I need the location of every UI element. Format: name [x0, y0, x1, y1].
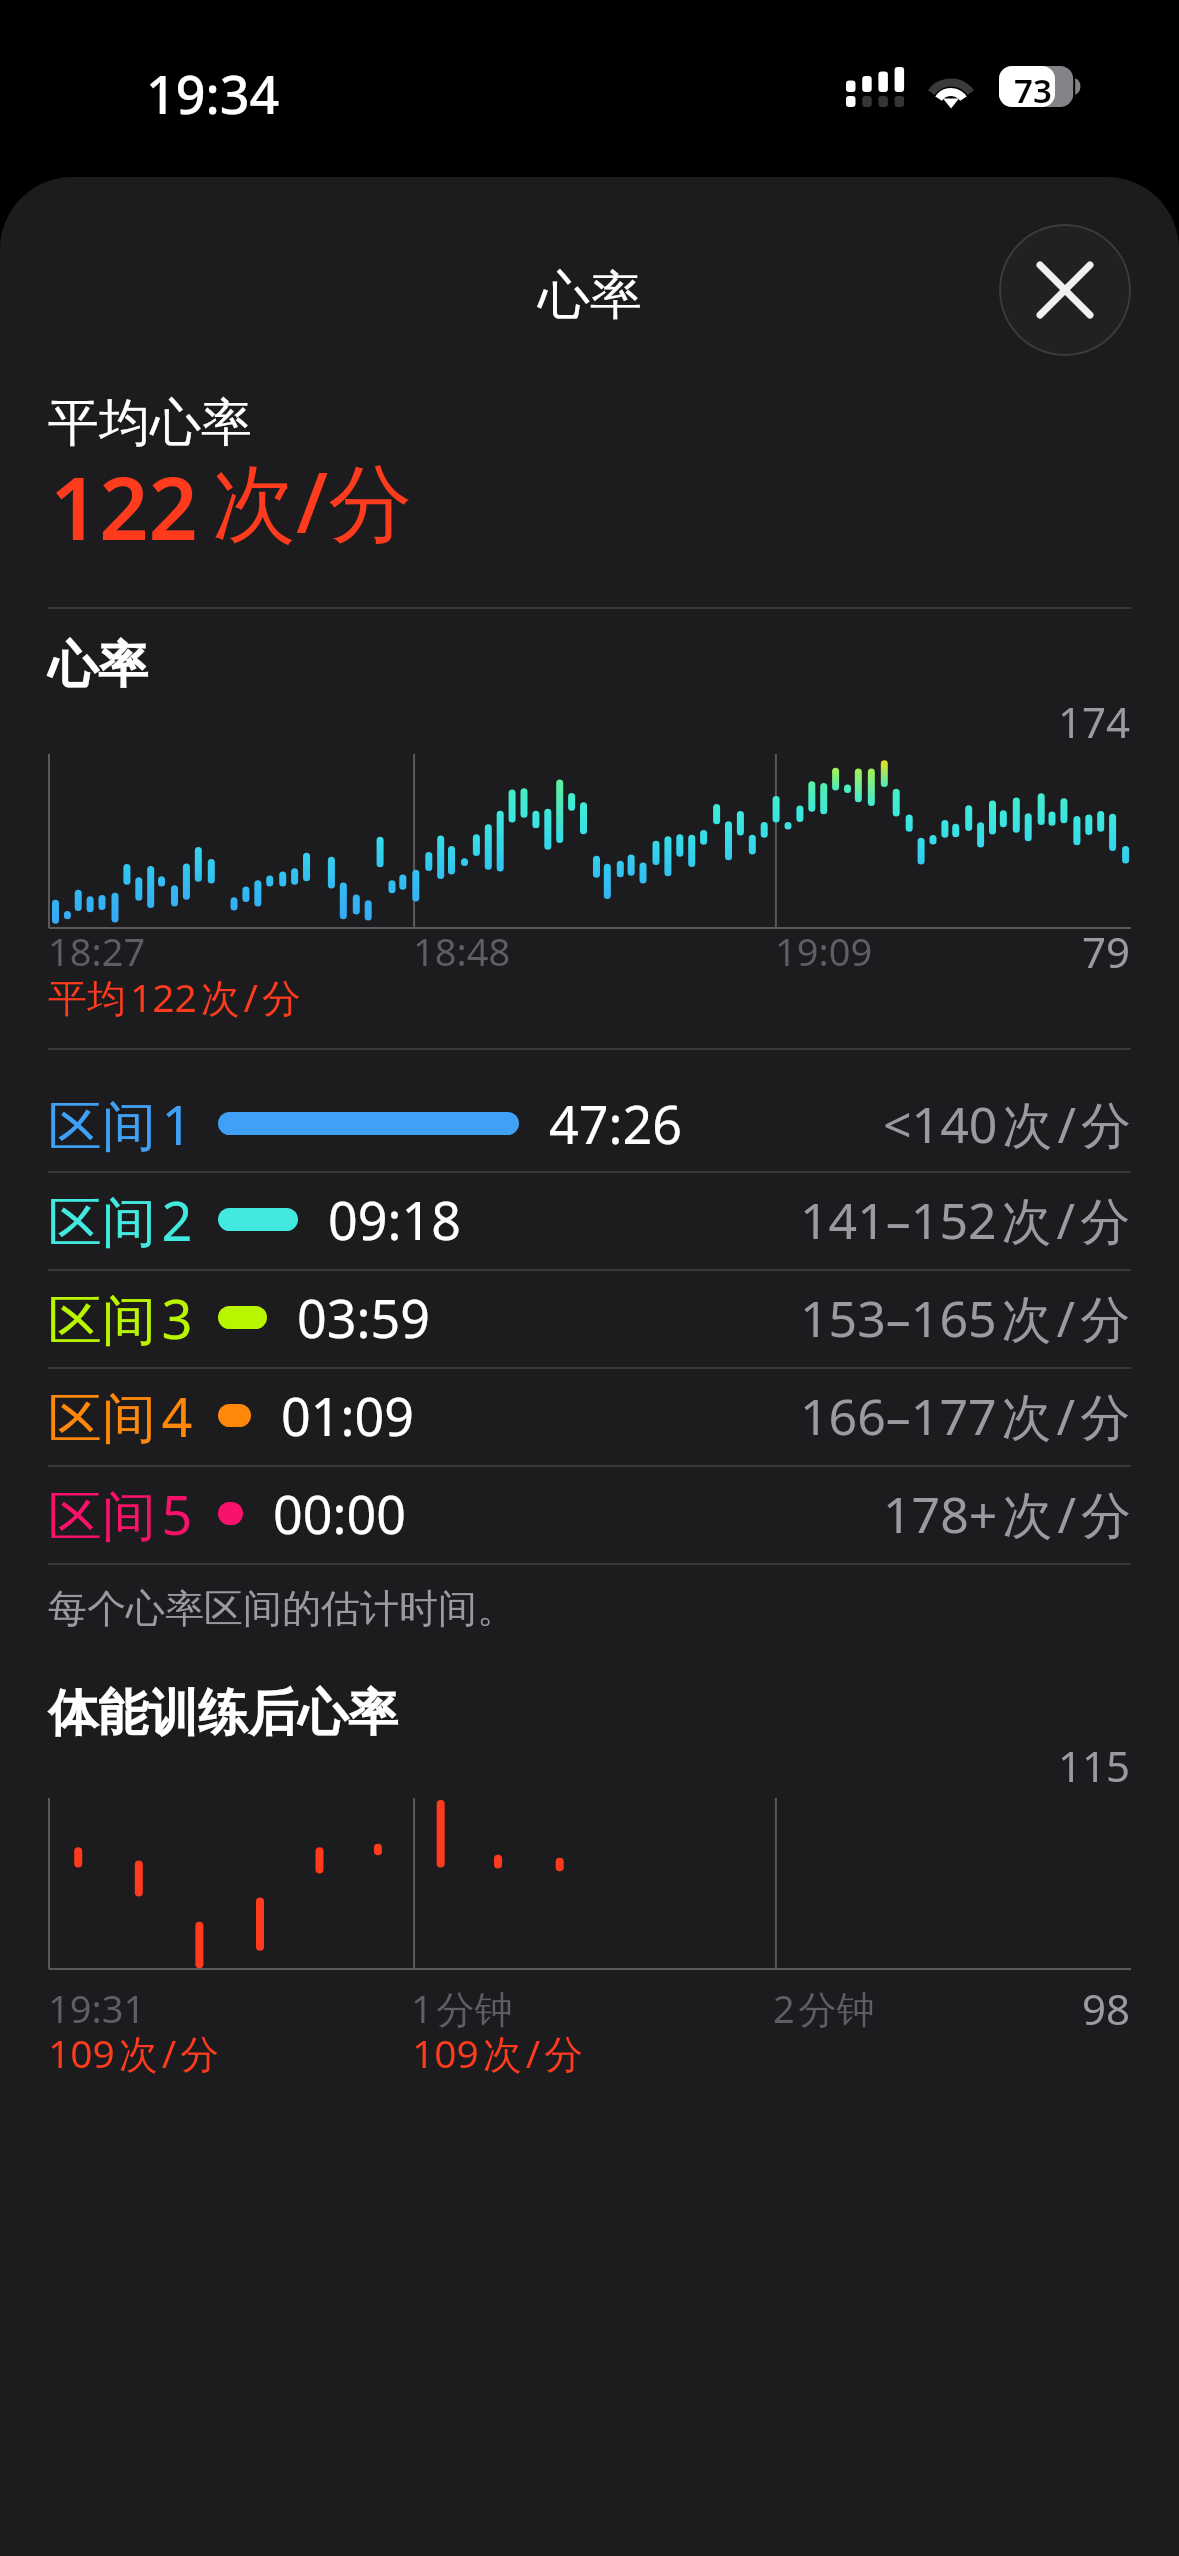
staticText: 区间 5	[48, 1477, 193, 1551]
button[interactable]: 区间 5	[48, 1465, 1131, 1562]
staticText: 115	[1058, 1737, 1131, 1794]
staticText: 平均 122 次 / 分	[48, 970, 302, 1023]
staticText: 区间 4	[48, 1379, 193, 1453]
staticText: 2 分钟	[773, 1982, 875, 2034]
staticText: 区间 3	[48, 1281, 193, 1355]
staticText: 109 次 / 分	[412, 2026, 584, 2079]
staticText: 178+ 次 / 分	[883, 1480, 1131, 1548]
staticText: 141–152 次 / 分	[800, 1186, 1131, 1254]
staticText: 79	[1082, 923, 1131, 980]
staticText: 47:26	[549, 1088, 682, 1159]
staticText: 次/分	[212, 443, 413, 558]
button[interactable]: 区间 3	[48, 1269, 1131, 1366]
button[interactable]: 关闭	[999, 224, 1131, 356]
staticText: 122	[50, 448, 198, 565]
staticText: <140 次 / 分	[883, 1090, 1131, 1158]
staticText: 心率	[48, 634, 148, 697]
staticText: 09:18	[328, 1184, 461, 1255]
staticText: 98	[1082, 1980, 1131, 2037]
button[interactable]: 区间 1	[48, 1075, 1131, 1172]
staticText: 03:59	[297, 1282, 430, 1353]
staticText: 18:48	[413, 925, 511, 977]
staticText: 区间 2	[48, 1183, 193, 1257]
staticText: 109 次 / 分	[48, 2026, 220, 2079]
staticText: 00:00	[273, 1478, 406, 1549]
staticText: 01:09	[281, 1380, 414, 1451]
staticText: 19:09	[775, 925, 873, 977]
staticText: 1 分钟	[411, 1982, 513, 2034]
staticText: 每个心率区间的估计时间。	[48, 1584, 516, 1633]
button[interactable]: 区间 4	[48, 1367, 1131, 1464]
staticText: 平均心率	[48, 391, 252, 455]
staticText: 174	[1058, 693, 1131, 750]
staticText: 体能训练后心率	[48, 1682, 398, 1745]
staticText: 19:34	[146, 58, 280, 129]
staticText: 166–177 次 / 分	[800, 1382, 1131, 1450]
staticText: 18:27	[48, 925, 146, 977]
staticText: 心率	[538, 263, 642, 329]
staticText: 19:31	[48, 1982, 146, 2034]
staticText: 153–165 次 / 分	[800, 1284, 1131, 1352]
button[interactable]: 区间 2	[48, 1171, 1131, 1268]
staticText: 区间 1	[48, 1087, 193, 1161]
staticText: 73	[1014, 68, 1052, 110]
